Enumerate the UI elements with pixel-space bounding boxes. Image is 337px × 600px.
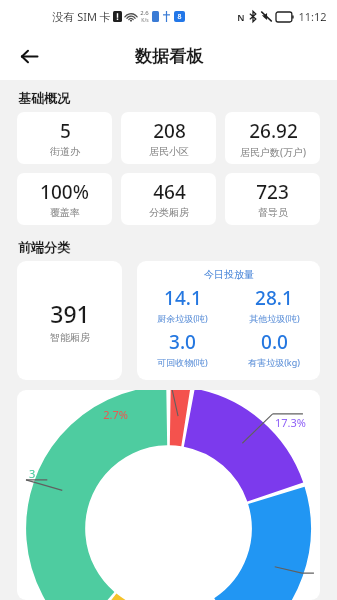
staticText: 208 [153, 118, 186, 144]
button[interactable]: 26.92 [225, 112, 320, 164]
staticText: 391 [50, 298, 90, 329]
staticText: 分类厢房 [149, 206, 189, 219]
staticText: 3… [29, 466, 44, 481]
staticText: N [237, 11, 245, 23]
staticText: K/s [141, 17, 149, 24]
staticText: 26.92 [249, 118, 298, 144]
staticText: 居民小区 [149, 145, 189, 158]
staticText: 街道办 [50, 145, 80, 158]
button[interactable]: 208 [121, 112, 216, 164]
staticText: 0.0 [261, 329, 288, 355]
staticText: 2.7% [103, 407, 128, 422]
staticText: 17.3% [275, 415, 306, 430]
button[interactable]: 391 [17, 261, 122, 380]
staticText: 居民户数(万户) [240, 145, 306, 159]
staticText: 100% [40, 179, 89, 205]
staticText: 基础概况 [18, 90, 70, 106]
staticText: 14.1 [164, 285, 202, 311]
staticText: 3.0 [169, 329, 196, 355]
staticText: 数据看板 [135, 46, 203, 67]
staticText: 智能厢房 [50, 331, 90, 344]
button[interactable]: 今日投放量 [137, 261, 320, 380]
staticText: 2.6 [140, 9, 149, 17]
staticText: 可回收物(吨) [157, 356, 208, 368]
staticText: 464 [153, 179, 186, 205]
staticText: 有害垃圾(kg) [248, 356, 300, 368]
staticText: 今日投放量 [204, 268, 254, 281]
staticText: 覆盖率 [50, 206, 80, 219]
staticText: 前端分类 [18, 239, 70, 255]
staticText: 督导员 [258, 206, 288, 219]
button[interactable]: 返回 [10, 37, 48, 75]
button[interactable]: 464 [121, 173, 216, 225]
staticText: 11:12 [298, 9, 327, 24]
button[interactable]: 5 [17, 112, 112, 164]
staticText: 28.1 [255, 285, 293, 311]
staticText: 5 [60, 118, 71, 144]
button[interactable]: 100% [17, 173, 112, 225]
staticText: 其他垃圾(吨) [249, 312, 300, 324]
staticText: 723 [256, 179, 289, 205]
button[interactable]: 723 [225, 173, 320, 225]
staticText: 8 [177, 12, 182, 22]
staticText: 厨余垃圾(吨) [157, 312, 208, 324]
staticText: 没有 SIM 卡 [52, 9, 111, 24]
